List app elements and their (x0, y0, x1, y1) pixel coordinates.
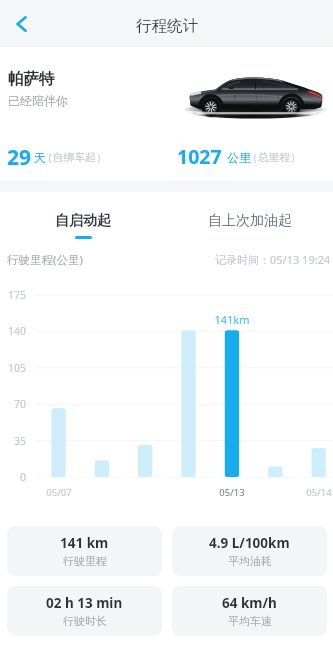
staticText: 已经陪伴你 (8, 93, 68, 108)
staticText: 平均车速 (228, 614, 272, 628)
button[interactable]: 自上次加油起 (166, 192, 333, 239)
staticText: 35 (13, 434, 26, 448)
staticText: 105 (7, 361, 26, 375)
staticText: 141 km (60, 534, 109, 552)
staticText: 公里 (227, 150, 251, 165)
button[interactable]: 141 km (7, 526, 162, 576)
staticText: 行驶里程 (63, 554, 107, 568)
staticText: 4.9 L/100km (209, 534, 290, 552)
staticText: 140 (7, 324, 26, 338)
staticText: 行驶里程(公里) (7, 252, 83, 268)
button[interactable]: 02 h 13 min (7, 586, 162, 636)
staticText: 行驶时长 (63, 614, 107, 628)
staticText: 帕萨特 (8, 69, 55, 89)
staticText: 141km (214, 312, 250, 327)
staticText: 05/14 (306, 486, 332, 499)
staticText: 自启动起 (55, 212, 111, 230)
staticText: 02 h 13 min (46, 594, 123, 612)
staticText: 1027 (177, 143, 222, 170)
staticText: 0 (19, 470, 26, 484)
button[interactable]: Back (0, 2, 44, 46)
staticText: （自绑车起） (42, 151, 107, 165)
staticText: 05/13 (219, 486, 245, 499)
button[interactable]: 64 km/h (172, 586, 327, 636)
staticText: 记录时间：05/13 19:24 (215, 252, 331, 267)
staticText: 平均油耗 (228, 554, 272, 568)
staticText: 70 (13, 397, 26, 411)
button[interactable]: 4.9 L/100km (172, 526, 327, 576)
staticText: （总里程） (247, 151, 301, 165)
staticText: 自上次加油起 (208, 212, 292, 230)
staticText: 175 (7, 288, 26, 302)
button[interactable]: 自启动起 (0, 192, 166, 239)
staticText: 行程统计 (136, 16, 198, 36)
staticText: 29 (7, 143, 32, 172)
staticText: 05/07 (46, 486, 72, 499)
staticText: 64 km/h (222, 594, 277, 612)
staticText: 天 (34, 150, 46, 165)
